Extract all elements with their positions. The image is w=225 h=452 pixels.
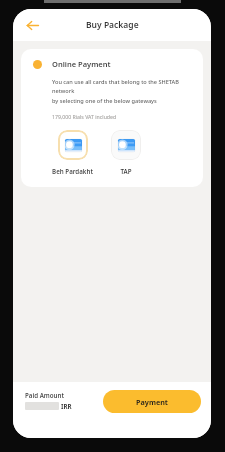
staticText: Online Payment: [52, 59, 111, 69]
staticText: Beh Pardakht: [52, 167, 93, 175]
staticText: 179,000 Rials VAT included: [52, 113, 117, 120]
staticText: TAP: [120, 167, 132, 175]
staticText: by selecting one of the below gateways: [52, 97, 157, 105]
staticText: IRR: [61, 402, 72, 410]
button[interactable]: Payment: [103, 390, 201, 413]
button[interactable]: Beh Pardakht: [58, 130, 88, 160]
button[interactable]: TAP: [111, 130, 141, 160]
staticText: Buy Package: [86, 19, 139, 31]
staticText: Paid Amount: [25, 391, 64, 399]
button[interactable]: Back: [21, 14, 43, 36]
staticText: You can use all cards that belong to the…: [52, 78, 191, 95]
staticText: Payment: [136, 397, 168, 407]
